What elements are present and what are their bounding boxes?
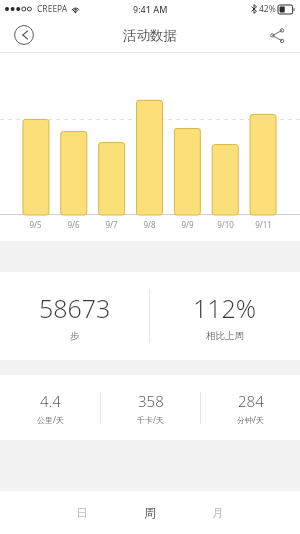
button[interactable]: 4.4 — [0, 375, 100, 440]
button[interactable]: 284 — [201, 375, 300, 440]
staticText: 日 — [76, 505, 88, 520]
staticText: CREEPA — [37, 3, 68, 15]
button[interactable]: 月 — [203, 499, 233, 526]
staticText: 9/8 — [143, 219, 156, 230]
staticText: 42% — [259, 3, 276, 15]
staticText: 58673 — [39, 291, 111, 325]
button[interactable]: Share — [264, 22, 290, 48]
staticText: 284 — [238, 391, 264, 411]
button[interactable]: 日 — [67, 499, 97, 526]
staticText: 相比上周 — [206, 330, 244, 342]
staticText: 千卡/天 — [137, 414, 164, 425]
staticText: 9/6 — [67, 219, 80, 230]
staticText: 9/5 — [29, 219, 42, 230]
button[interactable]: Back — [9, 20, 39, 50]
button[interactable]: 周 — [135, 499, 165, 526]
button[interactable]: 58673 — [0, 272, 149, 360]
staticText: 358 — [138, 391, 164, 411]
staticText: 步 — [70, 330, 80, 342]
button[interactable]: 112% — [150, 272, 300, 360]
staticText: 周 — [144, 505, 156, 520]
staticText: 活动数据 — [123, 27, 177, 44]
staticText: 9/11 — [255, 219, 272, 230]
staticText: 月 — [212, 505, 224, 520]
staticText: 4.4 — [40, 391, 61, 411]
staticText: 9/7 — [105, 219, 118, 230]
staticText: 112% — [193, 291, 257, 325]
staticText: 9:41 AM — [133, 3, 168, 15]
staticText: 9/10 — [217, 219, 234, 230]
staticText: 公里/天 — [37, 414, 64, 425]
staticText: 分钟/天 — [237, 414, 264, 425]
button[interactable]: 358 — [101, 375, 200, 440]
staticText: 9/9 — [181, 219, 194, 230]
